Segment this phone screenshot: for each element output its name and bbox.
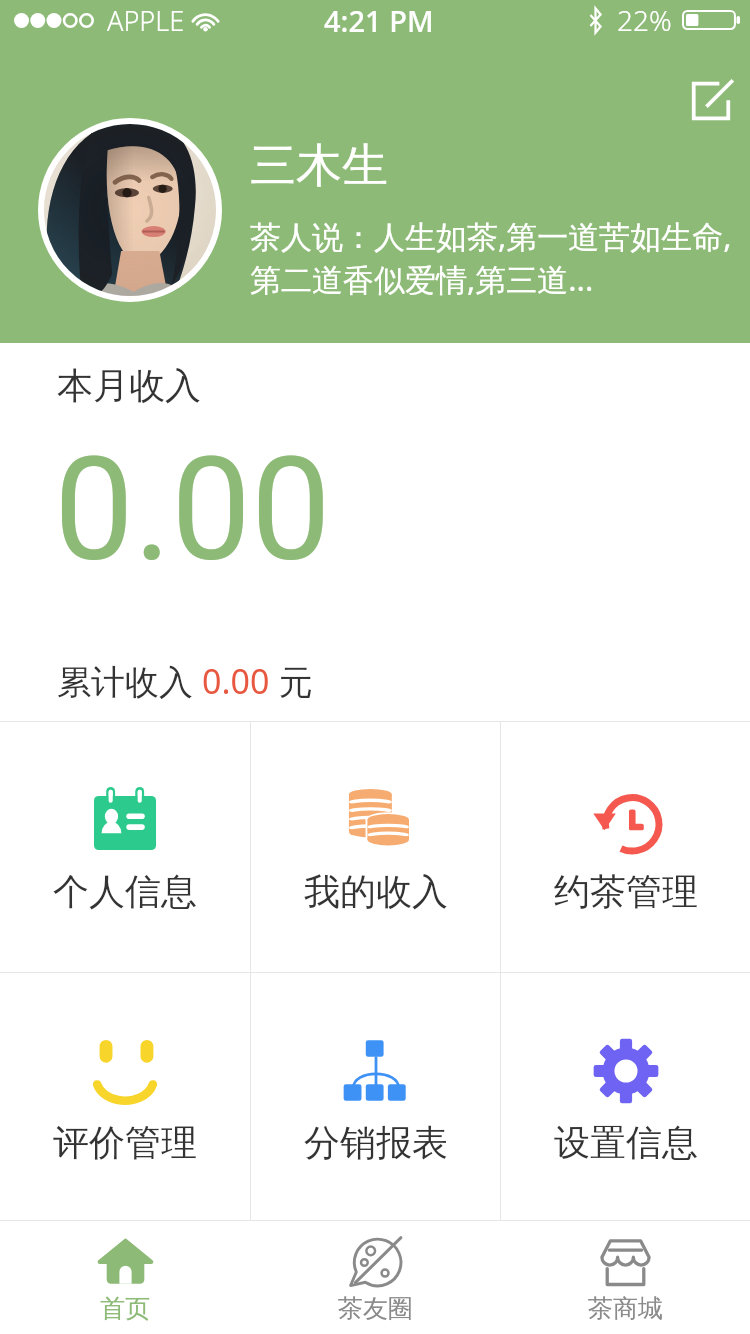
button[interactable]: 分销报表 (251, 973, 500, 1220)
staticText: 22% (617, 1, 672, 39)
staticText: 0.00 (54, 427, 331, 593)
staticText: 约茶管理 (554, 869, 698, 914)
button[interactable]: 茶商城 (500, 1221, 750, 1334)
button[interactable]: 约茶管理 (501, 722, 750, 972)
staticText: 首页 (100, 1293, 150, 1324)
button[interactable]: 首页 (0, 1221, 250, 1334)
staticText: 三木生 (250, 137, 388, 195)
staticText: 0.00 (202, 658, 270, 704)
staticText: 元 (270, 658, 313, 704)
button[interactable]: Edit profile (684, 74, 738, 128)
button[interactable]: 评价管理 (0, 973, 250, 1220)
staticText: 茶友圈 (338, 1293, 413, 1324)
staticText: 累计收入 (57, 658, 202, 704)
staticText: 本月收入 (57, 363, 201, 408)
staticText: 评价管理 (53, 1120, 197, 1165)
staticText: 4:21 PM (324, 1, 434, 40)
staticText: APPLE (107, 2, 185, 39)
staticText: 设置信息 (554, 1120, 698, 1165)
staticText: 茶人说：人生如茶,第一道苦如生命,第二道香似爱情,第三道... (250, 215, 732, 300)
button[interactable]: 茶友圈 (250, 1221, 500, 1334)
button[interactable]: 个人信息 (0, 722, 250, 972)
button[interactable]: 我的收入 (251, 722, 500, 972)
staticText: 个人信息 (53, 869, 197, 914)
button[interactable]: 设置信息 (501, 973, 750, 1220)
staticText: 茶商城 (588, 1293, 663, 1324)
staticText: 我的收入 (304, 869, 448, 914)
staticText: 分销报表 (304, 1120, 448, 1165)
